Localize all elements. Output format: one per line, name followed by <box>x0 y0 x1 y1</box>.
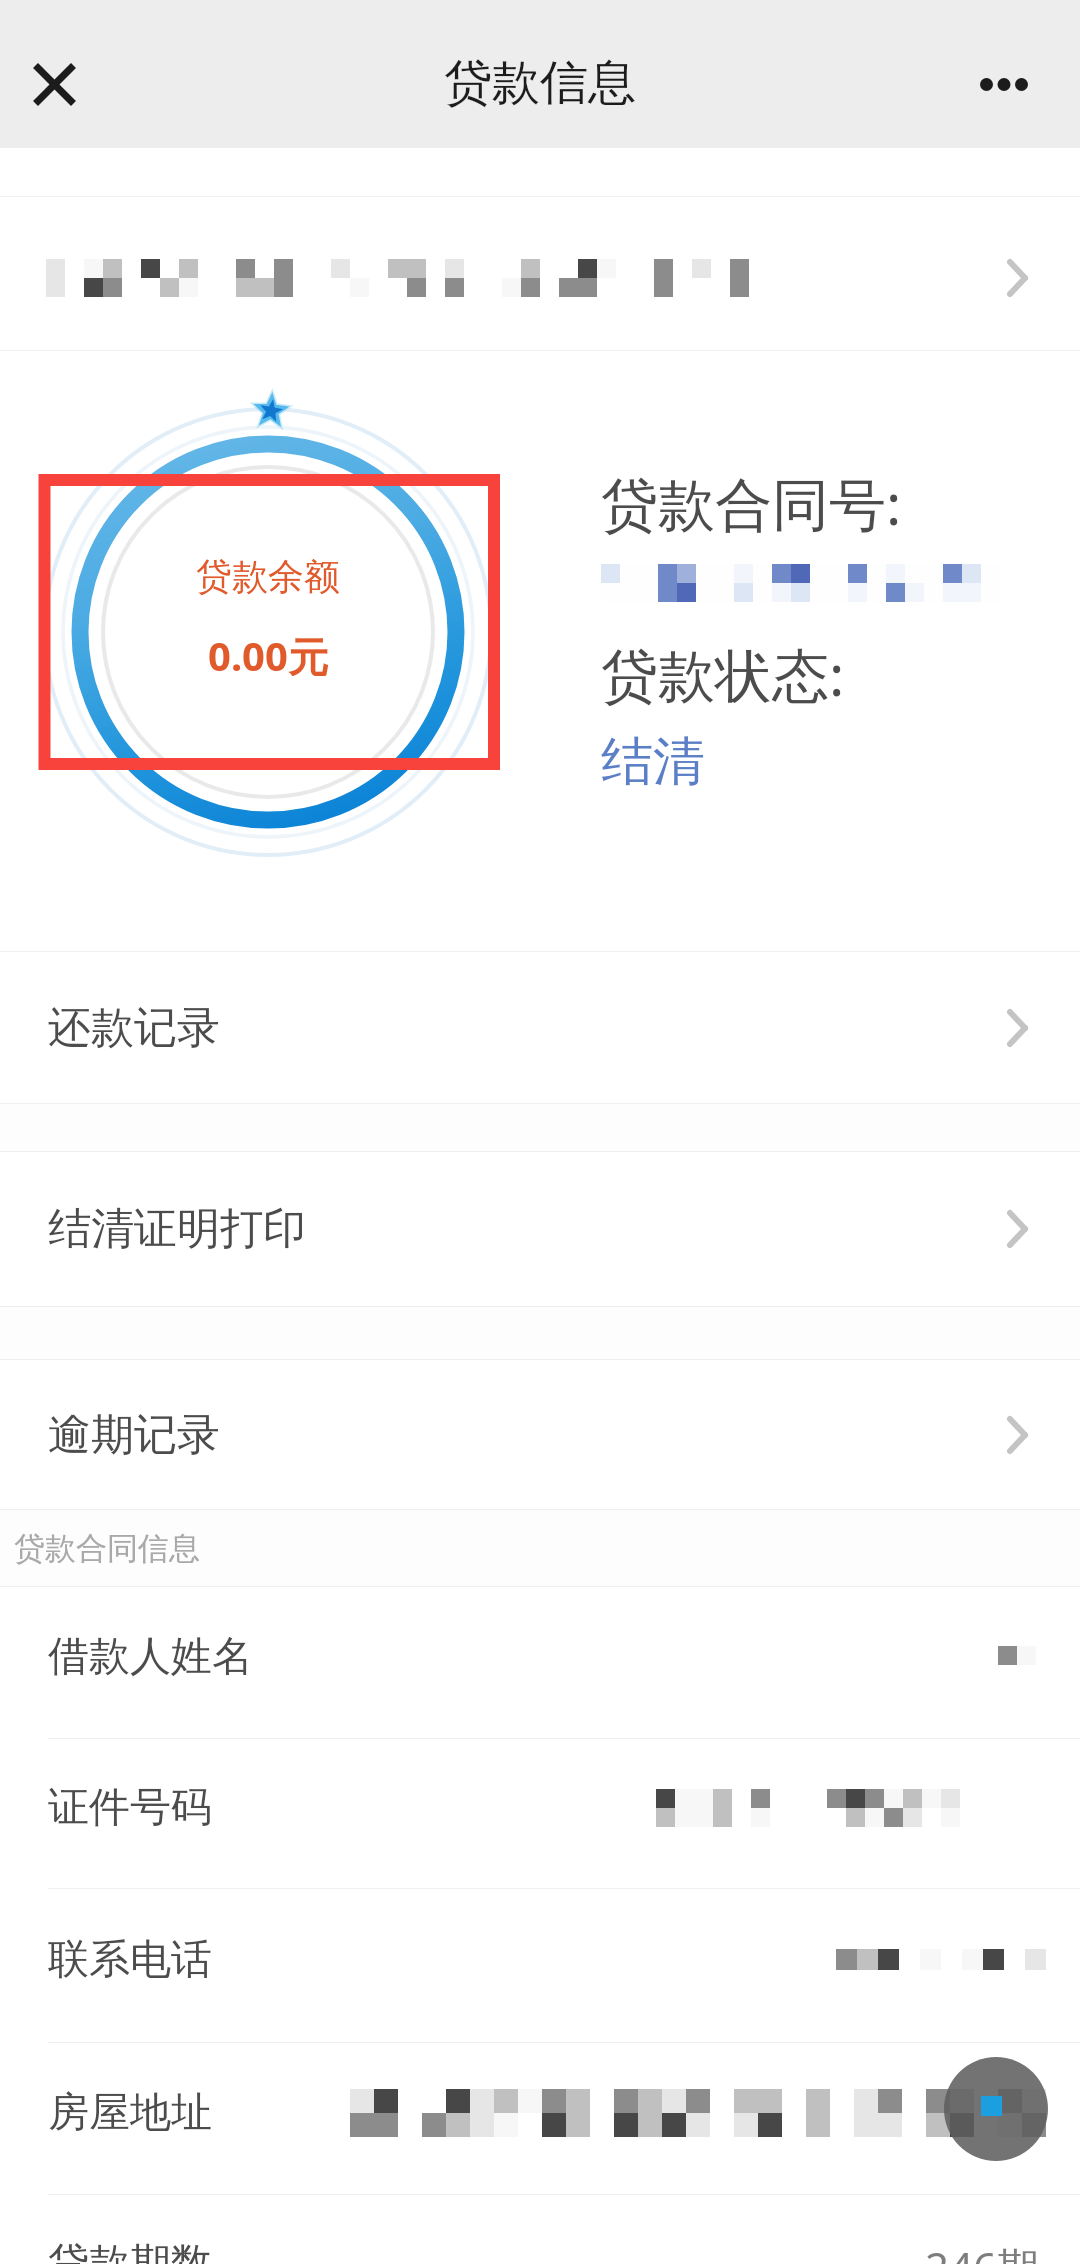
staticText: 贷款状态: <box>601 635 845 713</box>
staticText: 逾期记录 <box>48 1408 220 1462</box>
staticText: 借款人姓名 <box>48 1631 253 1683</box>
button[interactable]: Loan account <box>0 197 1080 350</box>
staticText: 贷款期数 <box>48 2238 212 2264</box>
button[interactable]: Close <box>14 44 94 124</box>
button[interactable]: More options <box>964 44 1044 124</box>
staticText: 结清证明打印 <box>48 1202 306 1256</box>
staticText: 0.00元 <box>208 628 328 683</box>
staticText: 贷款合同信息 <box>14 1529 200 1568</box>
staticText: 还款记录 <box>48 1001 220 1055</box>
staticText: 贷款余额 <box>196 554 340 599</box>
staticText: 联系电话 <box>48 1934 212 1986</box>
staticText: 证件号码 <box>48 1782 212 1834</box>
button[interactable]: 结清证明打印 <box>0 1152 1080 1306</box>
button[interactable]: 还款记录 <box>0 952 1080 1103</box>
staticText: 贷款信息 <box>444 53 636 113</box>
staticText: 结清 <box>601 729 705 795</box>
staticText: 房屋地址 <box>48 2087 212 2139</box>
staticText: 贷款合同号: <box>601 464 902 542</box>
button[interactable]: 逾期记录 <box>0 1360 1080 1509</box>
staticText: 246期 <box>925 2238 1040 2264</box>
